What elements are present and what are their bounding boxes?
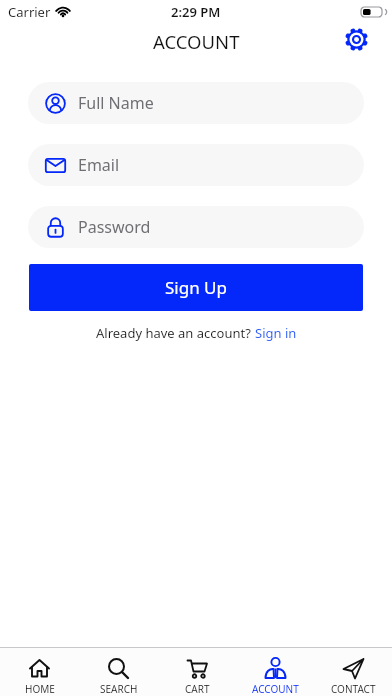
- staticText: HOME: [25, 682, 55, 696]
- staticText: Already have an account?: [96, 324, 255, 342]
- button[interactable]: [342, 25, 370, 53]
- button[interactable]: HOME: [0, 648, 79, 696]
- staticText: 2:29 PM: [171, 3, 221, 21]
- button[interactable]: CONTACT: [314, 648, 392, 696]
- button[interactable]: Sign in: [255, 324, 297, 342]
- staticText: CART: [185, 682, 210, 696]
- staticText: ACCOUNT: [252, 682, 299, 696]
- button[interactable]: Full Name: [28, 82, 364, 124]
- button[interactable]: ACCOUNT: [236, 648, 314, 696]
- staticText: ACCOUNT: [153, 29, 240, 54]
- button[interactable]: SEARCH: [79, 648, 158, 696]
- button[interactable]: CART: [158, 648, 236, 696]
- staticText: Full Name: [78, 92, 154, 114]
- staticText: Sign Up: [165, 276, 227, 299]
- staticText: Email: [78, 154, 120, 176]
- button[interactable]: Password: [28, 206, 364, 248]
- staticText: SEARCH: [100, 682, 138, 696]
- button[interactable]: Sign Up: [29, 264, 363, 311]
- button[interactable]: Email: [28, 144, 364, 186]
- staticText: Password: [78, 216, 151, 238]
- staticText: CONTACT: [331, 682, 376, 696]
- staticText: Carrier: [8, 3, 51, 21]
